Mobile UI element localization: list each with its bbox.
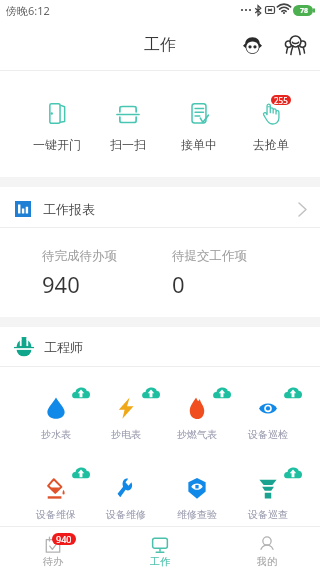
staticText: 待完成待办项 — [42, 248, 117, 264]
staticText: 去抢单 — [253, 137, 289, 152]
staticText: 接单中 — [181, 137, 217, 152]
staticText: 工作报表 — [43, 201, 95, 217]
button[interactable]: 工作 — [106, 526, 213, 569]
button[interactable]: 工作报表 — [0, 187, 320, 227]
button[interactable]: 设备维修 — [91, 466, 161, 521]
staticText: 78 — [300, 6, 309, 16]
staticText: 255 — [274, 95, 288, 105]
button[interactable]: 抄电表 — [91, 386, 161, 441]
staticText: 940 — [56, 533, 72, 545]
staticText: 设备巡查 — [248, 508, 288, 521]
button[interactable]: 扫一扫 — [92, 71, 163, 152]
button[interactable]: 一键开门 — [21, 71, 92, 152]
button[interactable]: Customer service — [279, 29, 311, 61]
staticText: 工作 — [144, 35, 176, 55]
button[interactable]: 抄水表 — [21, 386, 91, 441]
staticText: 设备维修 — [106, 508, 146, 521]
staticText: 傍晚6:12 — [6, 3, 50, 18]
staticText: 工程师 — [44, 339, 83, 355]
button[interactable]: 940 — [0, 526, 106, 569]
staticText: 抄水表 — [41, 428, 71, 441]
staticText: 一键开门 — [33, 137, 81, 152]
staticText: 940 — [42, 269, 80, 299]
button[interactable]: 设备巡检 — [232, 386, 303, 441]
staticText: 维修查验 — [177, 508, 217, 521]
button[interactable]: 设备维保 — [21, 466, 91, 521]
staticText: 设备维保 — [36, 508, 76, 521]
button[interactable]: 255 — [235, 71, 307, 152]
staticText: 0 — [172, 269, 185, 299]
button[interactable]: 维修查验 — [161, 466, 232, 521]
button[interactable]: 设备巡查 — [232, 466, 303, 521]
staticText: 我的 — [257, 555, 277, 568]
button[interactable]: 接单中 — [163, 71, 235, 152]
staticText: 抄燃气表 — [177, 428, 217, 441]
staticText: 抄电表 — [111, 428, 141, 441]
button[interactable]: 抄燃气表 — [161, 386, 232, 441]
staticText: 扫一扫 — [110, 137, 146, 152]
staticText: 待提交工作项 — [172, 248, 247, 264]
staticText: 设备巡检 — [248, 428, 288, 441]
staticText: 待办 — [43, 555, 63, 568]
button[interactable]: 我的 — [213, 526, 320, 569]
button[interactable]: Profile — [236, 29, 268, 61]
staticText: 工作 — [150, 555, 170, 568]
